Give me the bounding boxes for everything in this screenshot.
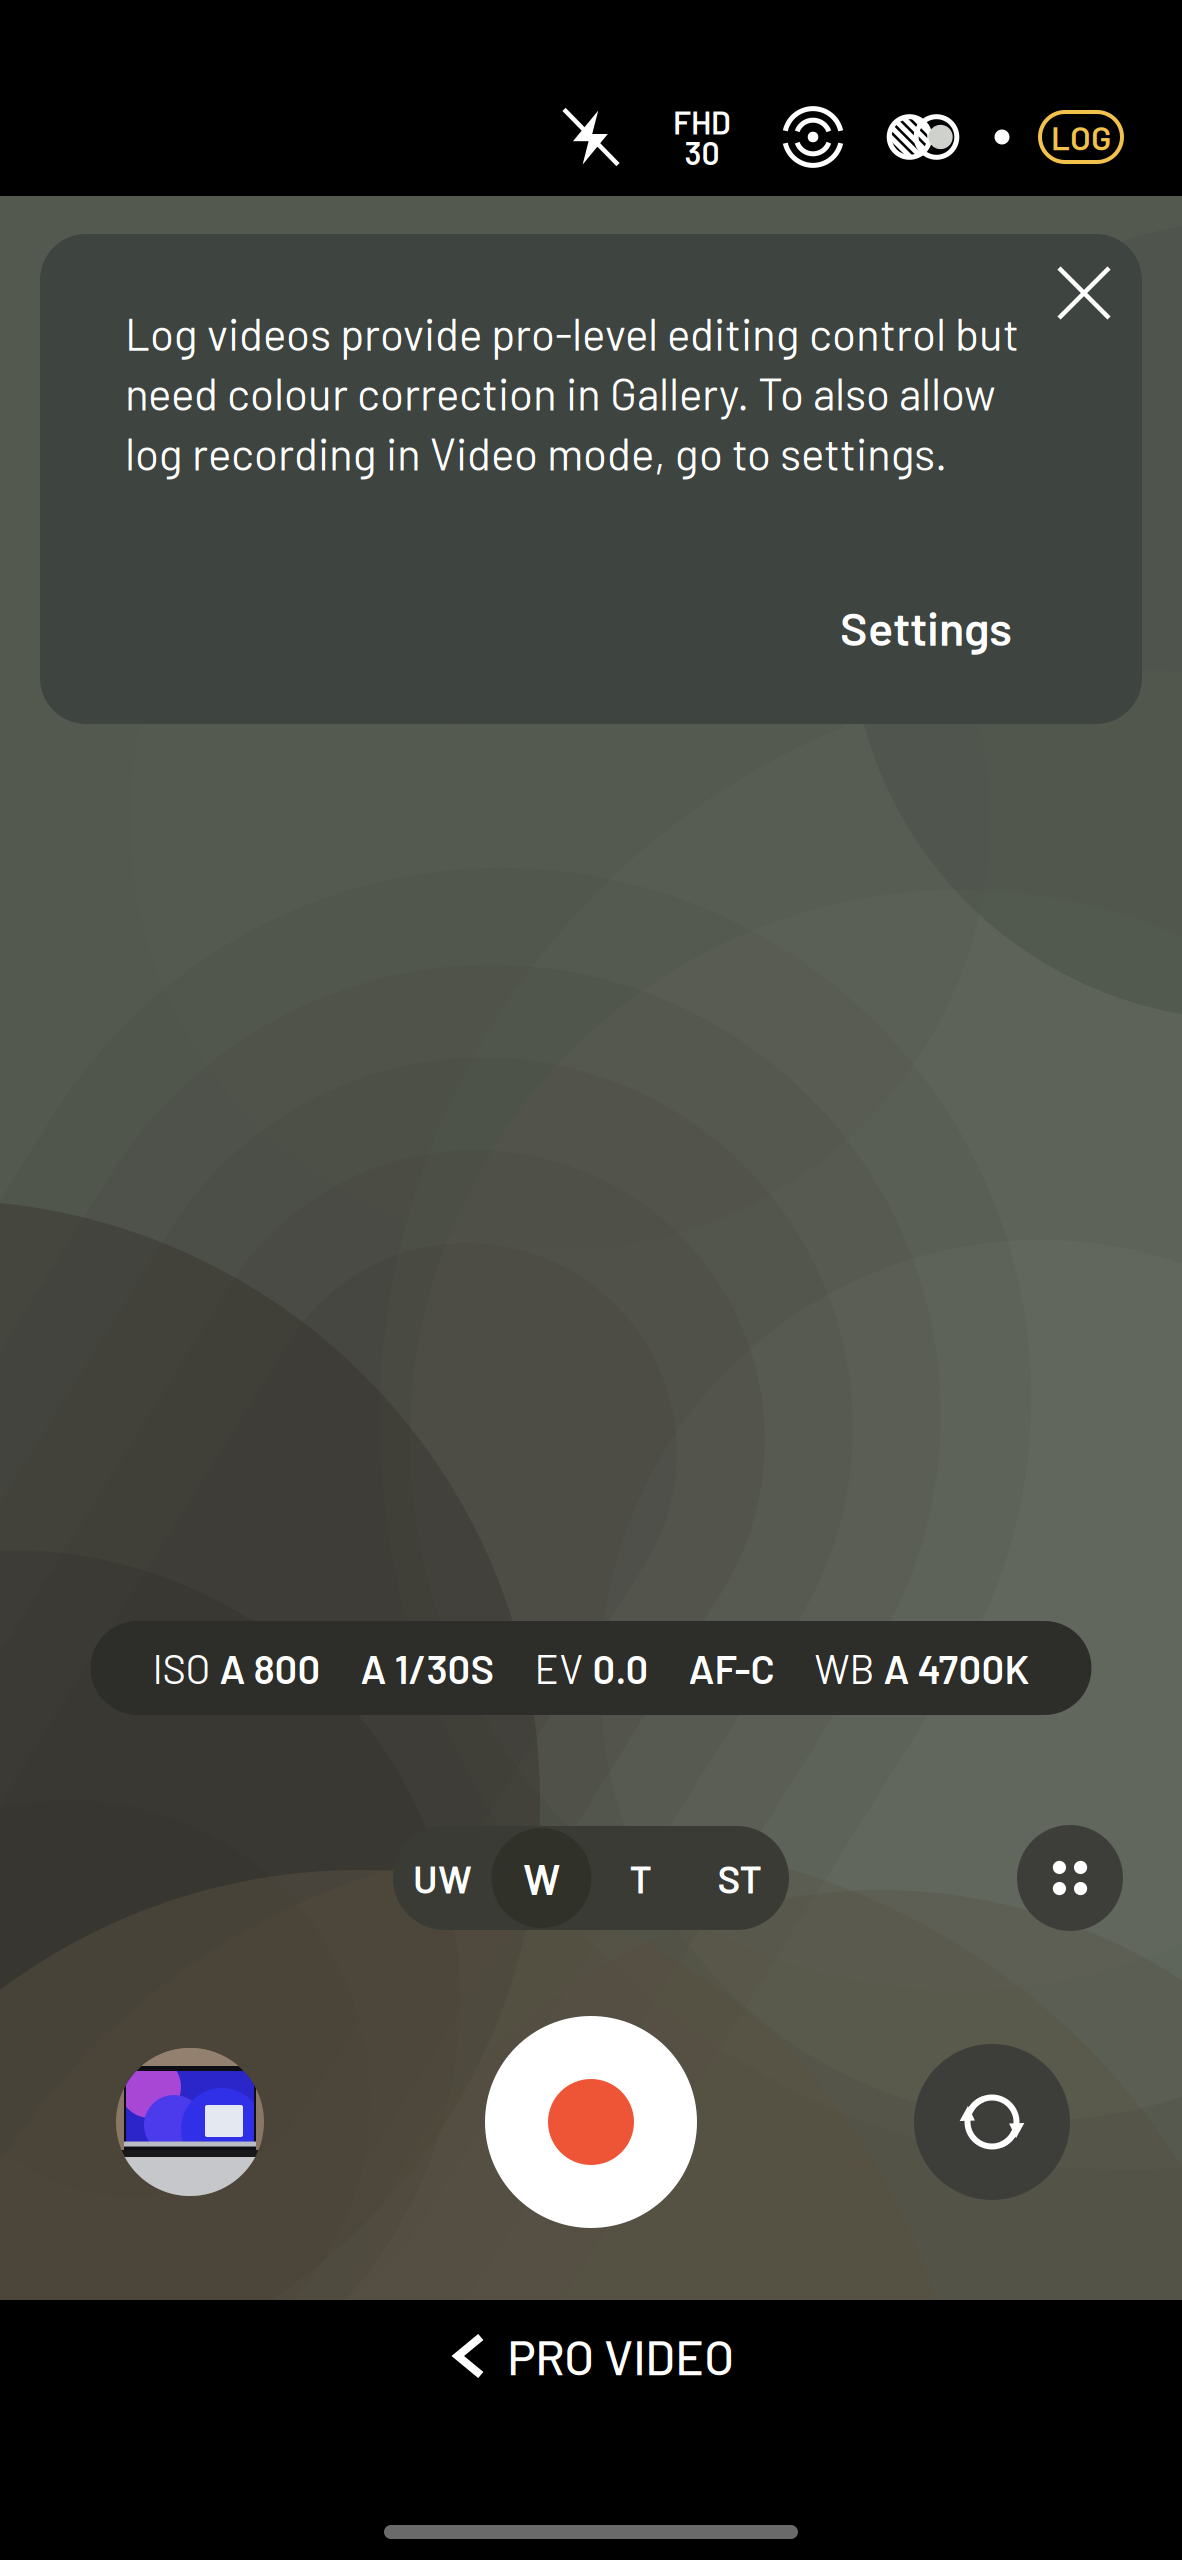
button[interactable]: Focus peaking	[780, 104, 846, 170]
staticText: Log videos provide pro-level editing con…	[125, 307, 1019, 360]
staticText: T	[629, 1855, 651, 1901]
button[interactable]: W	[492, 1826, 591, 1930]
button[interactable]: More options	[1017, 1825, 1123, 1931]
staticText: 30	[684, 133, 719, 171]
staticText: ST	[717, 1855, 761, 1901]
button[interactable]: LOG	[1040, 112, 1122, 162]
button[interactable]: T	[591, 1826, 690, 1930]
staticText: Settings	[840, 599, 1012, 655]
button[interactable]: Zebra stripes	[888, 102, 958, 172]
button[interactable]: Close	[1056, 265, 1112, 321]
button[interactable]: PRO VIDEO	[448, 2327, 734, 2385]
button[interactable]: Record	[485, 2016, 697, 2228]
button[interactable]: Settings	[840, 599, 1012, 655]
staticText: A 1/30S	[360, 1644, 494, 1692]
button[interactable]: ST	[690, 1826, 789, 1930]
staticText: FHD	[673, 103, 731, 141]
staticText: AF-C	[688, 1644, 774, 1692]
button[interactable]: UW	[393, 1826, 492, 1930]
staticText: UW	[413, 1855, 472, 1901]
staticText: W	[523, 1852, 560, 1904]
button[interactable]: FHD	[673, 103, 731, 171]
button[interactable]: Gallery	[116, 2048, 264, 2196]
button[interactable]: Switch camera	[914, 2044, 1070, 2200]
staticText: EV	[534, 1644, 583, 1692]
button[interactable]: Flash off	[561, 107, 621, 167]
staticText: ISO	[152, 1644, 210, 1692]
staticText: WB	[814, 1644, 874, 1692]
staticText: PRO VIDEO	[507, 2327, 734, 2385]
staticText: A 4700K	[883, 1644, 1029, 1692]
staticText: LOG	[1051, 117, 1111, 157]
staticText: A 800	[219, 1644, 320, 1692]
staticText: log recording in Video mode, go to setti…	[125, 426, 947, 479]
staticText: 0.0	[592, 1644, 648, 1692]
staticText: need colour correction in Gallery. To al…	[125, 367, 996, 419]
